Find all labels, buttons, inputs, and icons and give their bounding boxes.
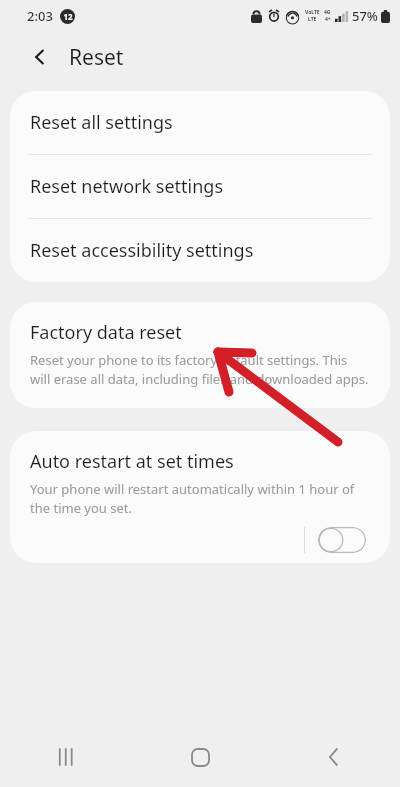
button[interactable]: Home — [134, 727, 267, 787]
button[interactable]: Auto restart toggle — [318, 527, 366, 553]
button[interactable]: Factory data reset — [10, 302, 390, 408]
button[interactable]: Recents — [0, 727, 134, 787]
staticText: Reset accessibility settings — [30, 238, 254, 263]
button[interactable]: Reset network settings — [10, 155, 390, 218]
staticText: Reset your phone to its factory default … — [30, 351, 370, 388]
button[interactable]: Reset all settings — [10, 91, 390, 154]
staticText: Factory data reset — [30, 320, 182, 345]
staticText: 57% — [352, 7, 378, 25]
button[interactable]: Reset accessibility settings — [10, 219, 390, 282]
staticText: Auto restart at set times — [30, 449, 234, 474]
staticText: Reset all settings — [30, 110, 173, 135]
button[interactable]: Back — [267, 727, 400, 787]
staticText: VoLTE — [305, 9, 320, 16]
staticText: Your phone will restart automatically wi… — [30, 480, 370, 517]
staticText: LTE — [308, 16, 317, 23]
staticText: 4G — [324, 9, 331, 16]
button[interactable]: Back — [22, 39, 58, 75]
staticText: 12 — [63, 11, 73, 22]
button[interactable]: Auto restart at set times — [10, 431, 390, 563]
staticText: Reset — [69, 43, 124, 72]
staticText: 2:03 — [27, 7, 53, 25]
staticText: Reset network settings — [30, 174, 224, 199]
staticText: 4+ — [325, 16, 331, 23]
